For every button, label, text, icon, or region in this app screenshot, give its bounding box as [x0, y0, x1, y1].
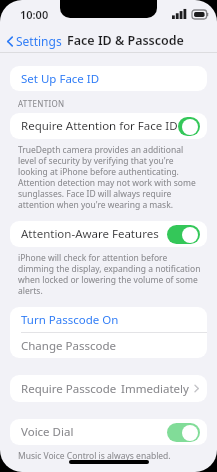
button[interactable]: Voice Dial: [10, 419, 207, 445]
staticText: Attention-Aware Features: [21, 226, 159, 242]
button[interactable]: Require Passcode: [10, 375, 207, 402]
other: Attention-Aware Features toggle, on: [167, 225, 200, 244]
button[interactable]: Change Passcode: [10, 333, 207, 358]
staticText: Settings: [16, 33, 62, 49]
button[interactable]: Attention-Aware Features: [10, 221, 207, 247]
staticText: Voice Dial: [21, 424, 74, 440]
staticText: Face ID & Passcode: [67, 32, 184, 49]
button[interactable]: Turn Passcode On: [10, 307, 207, 332]
staticText: TrueDepth camera provides an additional …: [18, 144, 201, 210]
staticText: Music Voice Control is always enabled.: [18, 450, 171, 462]
staticText: Change Passcode: [21, 338, 116, 354]
button[interactable]: Settings: [0, 30, 66, 52]
other: Require Attention for Face ID toggle, on: [178, 117, 200, 136]
button[interactable]: Require Attention for Face ID: [10, 113, 207, 139]
staticText: Require Attention for Face ID: [21, 118, 178, 134]
staticText: Immediately: [121, 381, 189, 397]
button[interactable]: Set Up Face ID: [10, 66, 207, 91]
staticText: 10:00: [20, 7, 49, 22]
other: Voice Dial toggle, on: [167, 423, 200, 442]
staticText: Require Passcode: [21, 381, 117, 397]
staticText: Set Up Face ID: [21, 71, 100, 87]
staticText: Turn Passcode On: [21, 312, 119, 328]
staticText: iPhone will check for attention before d…: [18, 252, 201, 296]
staticText: ATTENTION: [18, 98, 65, 109]
